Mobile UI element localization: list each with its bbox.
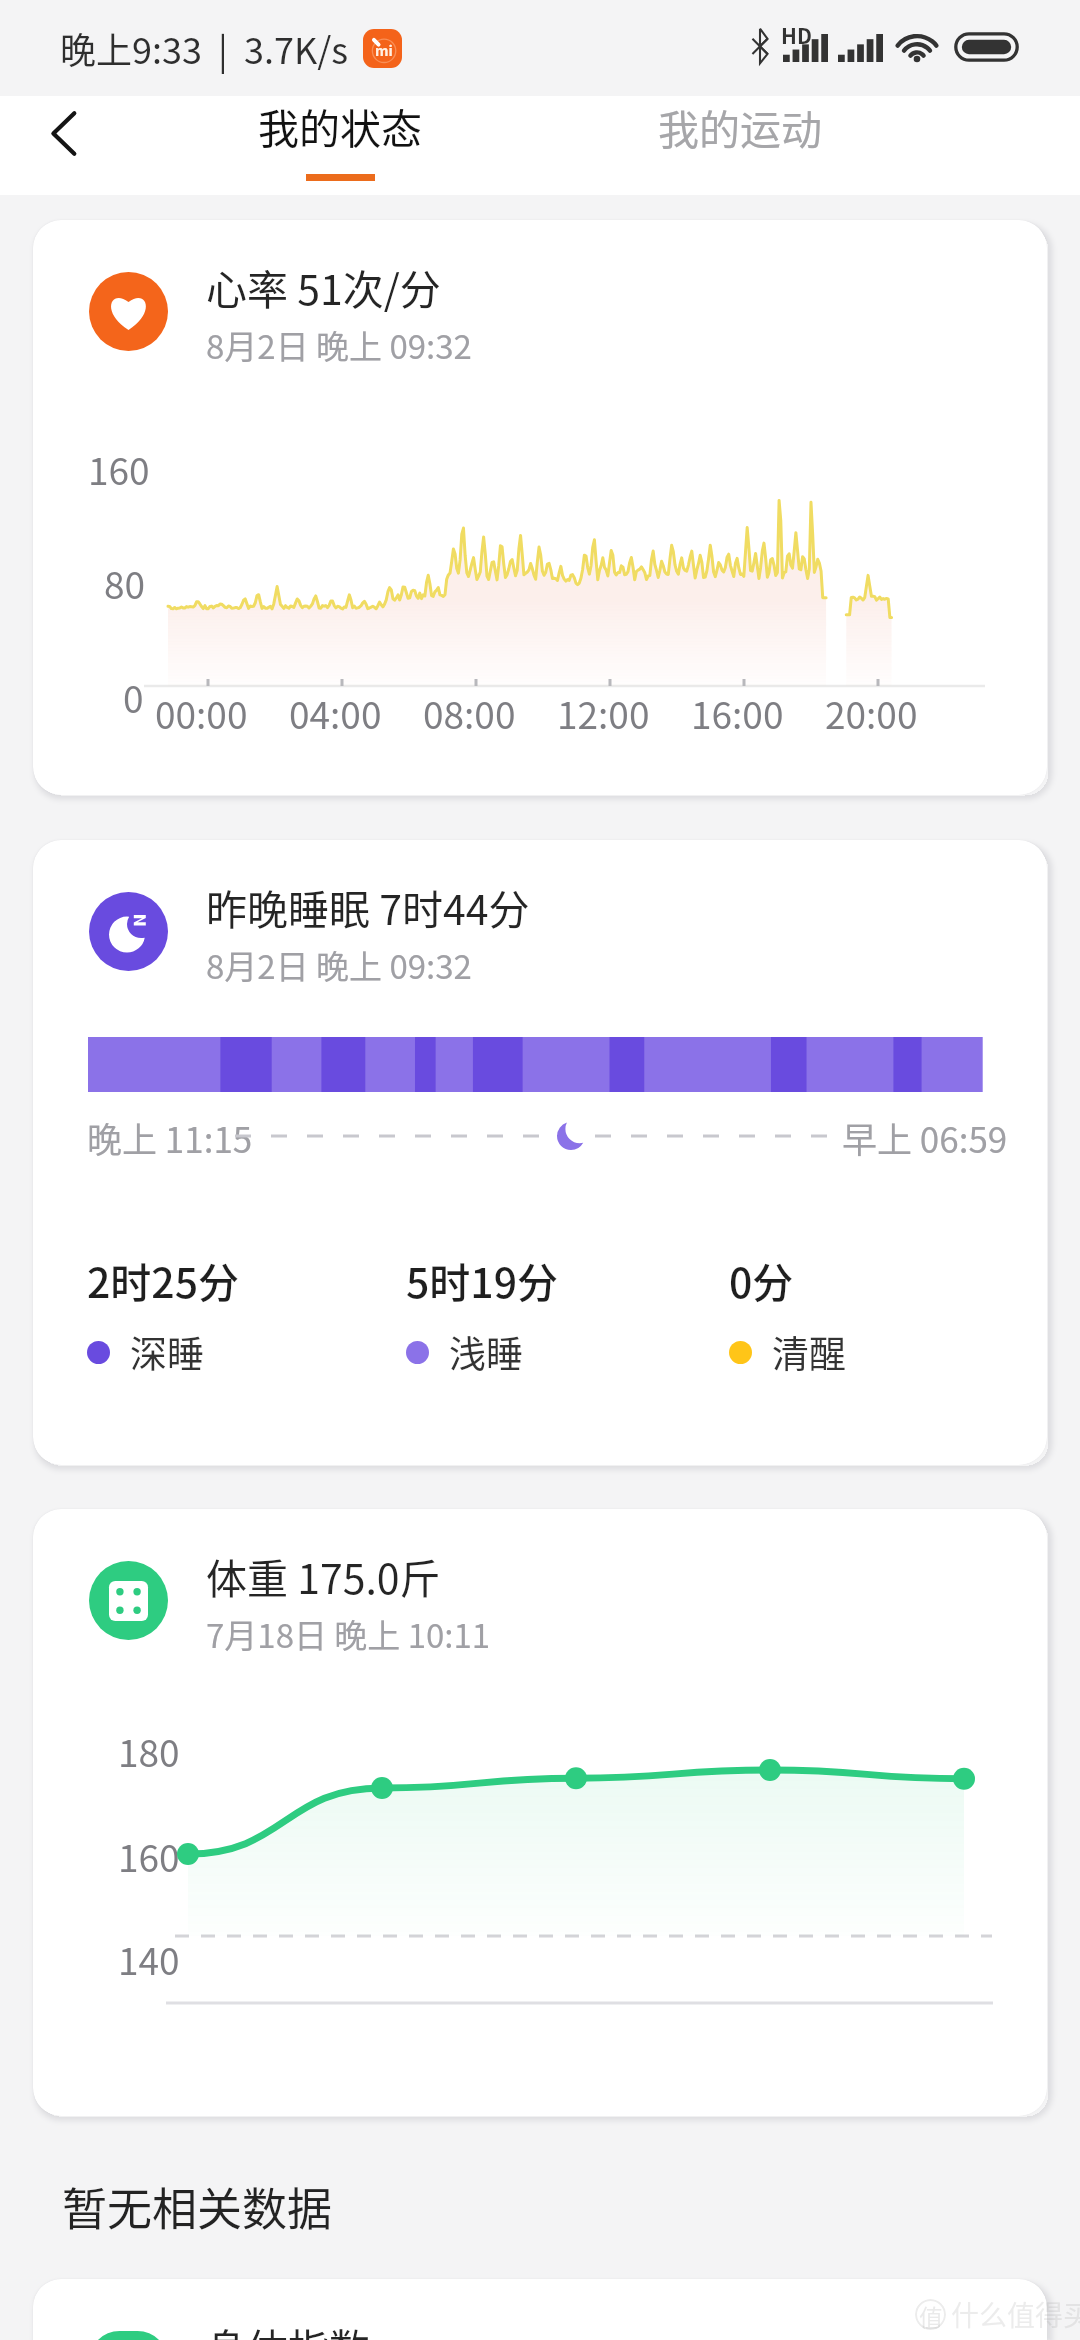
staticText: 晚上 11:15: [87, 1112, 253, 1163]
staticText: 值: [919, 2299, 943, 2330]
staticText: 180: [118, 1724, 180, 1778]
staticText: 早上 06:59: [842, 1112, 1008, 1163]
staticText: 08:00: [423, 686, 543, 740]
staticText: 00:00: [155, 686, 275, 740]
staticText: 160: [88, 442, 150, 496]
staticText: 0: [123, 670, 144, 724]
button[interactable]: 我的状态: [230, 96, 450, 195]
button[interactable]: 我的运动: [630, 96, 850, 195]
button[interactable]: 心率 51次/分: [33, 220, 1047, 795]
staticText: 晚上9:33 | 3.7K/s: [60, 22, 349, 74]
staticText: 20:00: [825, 686, 945, 740]
staticText: 5时19分: [406, 1250, 559, 1309]
staticText: 什么值得买: [951, 2294, 1080, 2335]
staticText: 体重 175.0斤: [206, 1546, 441, 1605]
staticText: 160: [118, 1829, 180, 1883]
button[interactable]: 体重 175.0斤: [33, 1509, 1047, 2116]
staticText: 12:00: [557, 686, 677, 740]
staticText: 暂无相关数据: [62, 2174, 333, 2239]
staticText: 2时25分: [87, 1250, 240, 1309]
staticText: HD: [781, 20, 812, 50]
button[interactable]: 身体指数: [33, 2279, 1047, 2340]
staticText: 心率 51次/分: [206, 257, 441, 316]
staticText: 140: [118, 1932, 180, 1986]
staticText: 0分: [729, 1250, 794, 1309]
staticText: 身体指数: [206, 2316, 370, 2340]
staticText: 04:00: [289, 686, 409, 740]
staticText: 我的状态: [258, 96, 422, 155]
button[interactable]: Back: [0, 96, 124, 195]
staticText: 我的运动: [658, 97, 822, 156]
staticText: mi: [375, 40, 393, 60]
button[interactable]: 昨晚睡眠 7时44分: [33, 840, 1047, 1465]
staticText: 16:00: [691, 686, 811, 740]
staticText: 80: [104, 556, 146, 610]
staticText: 清醒: [772, 1325, 846, 1379]
staticText: 浅睡: [449, 1325, 523, 1379]
staticText: 8月2日 晚上 09:32: [206, 321, 472, 369]
staticText: 8月2日 晚上 09:32: [206, 941, 472, 989]
staticText: 7月18日 晚上 10:11: [206, 1610, 491, 1658]
staticText: 昨晚睡眠 7时44分: [206, 877, 530, 936]
staticText: 深睡: [130, 1325, 204, 1379]
